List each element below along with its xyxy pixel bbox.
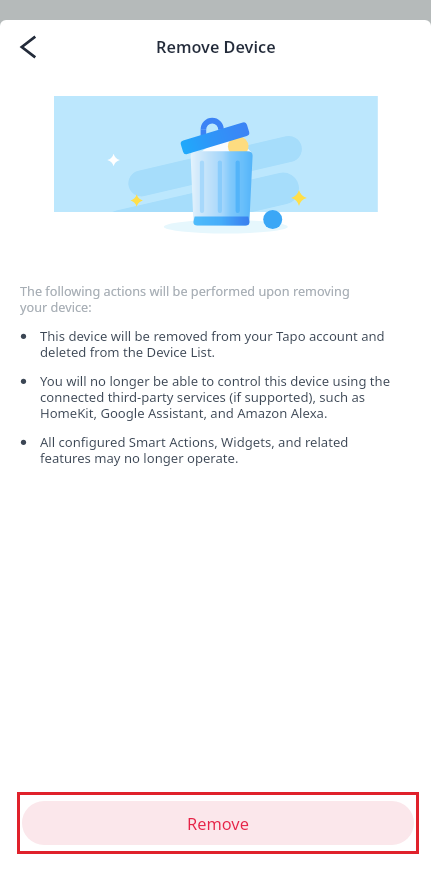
staticText: Remove <box>187 812 249 834</box>
button[interactable]: Back <box>10 29 46 65</box>
staticText: All configured Smart Actions, Widgets, a… <box>40 433 402 466</box>
staticText: Remove Device <box>156 36 276 58</box>
button[interactable]: Remove <box>22 801 414 845</box>
staticText: You will no longer be able to control th… <box>40 372 402 421</box>
staticText: The following actions will be performed … <box>20 282 372 315</box>
staticText: This device will be removed from your Ta… <box>40 327 402 360</box>
